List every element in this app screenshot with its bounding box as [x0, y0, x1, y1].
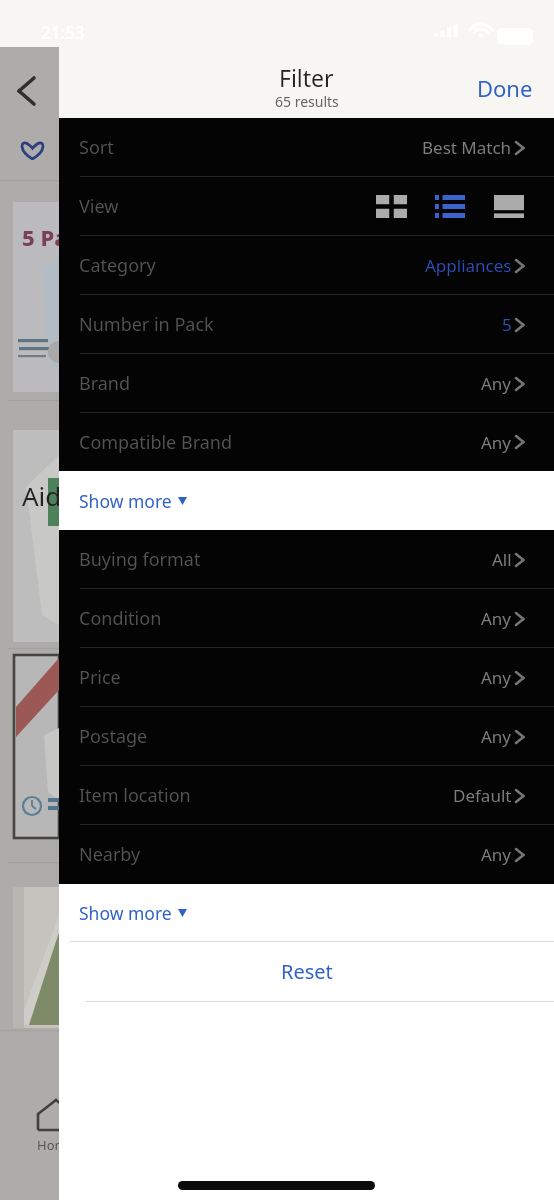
staticText: View	[79, 194, 119, 219]
staticText: Show more	[79, 489, 172, 513]
staticText: Buying format	[79, 547, 201, 572]
staticText: Price	[79, 665, 121, 690]
button[interactable]: Brand	[59, 354, 554, 413]
staticText: Brand	[79, 371, 131, 396]
staticText: Done	[477, 73, 533, 103]
staticText: Any	[481, 431, 512, 454]
button[interactable]: Buying format	[59, 530, 554, 589]
staticText: 21:53	[41, 21, 85, 44]
staticText: Appliances	[425, 254, 512, 277]
button[interactable]: Price	[59, 648, 554, 707]
button[interactable]: Compatible Brand	[59, 413, 554, 471]
staticText: Hom	[37, 1136, 67, 1154]
button[interactable]: Sort	[59, 118, 554, 177]
staticText: Aid	[22, 478, 62, 513]
staticText: Filter	[279, 62, 334, 93]
button[interactable]: Grid view	[376, 195, 407, 218]
staticText: 5	[502, 313, 512, 336]
staticText: Show more	[79, 901, 172, 925]
staticText: Condition	[79, 606, 162, 631]
staticText: Reset	[281, 958, 333, 985]
button[interactable]: Number in Pack	[59, 295, 554, 354]
staticText: Compatible Brand	[79, 430, 233, 455]
staticText: Default	[453, 784, 512, 807]
staticText: 65 results	[275, 92, 339, 111]
staticText: Postage	[79, 724, 148, 749]
staticText: Number in Pack	[79, 312, 214, 337]
staticText: Item location	[79, 783, 191, 808]
button[interactable]: Condition	[59, 589, 554, 648]
staticText: Sort	[79, 135, 114, 160]
staticText: Any	[481, 725, 512, 748]
staticText: Any	[481, 607, 512, 630]
button[interactable]: Category	[59, 236, 554, 295]
button[interactable]: Gallery view	[494, 195, 524, 218]
staticText: Nearby	[79, 842, 141, 867]
staticText: All	[492, 548, 512, 571]
button[interactable]: Show more	[59, 884, 554, 941]
button[interactable]: Done	[477, 73, 533, 103]
staticText: Any	[481, 666, 512, 689]
button[interactable]: List view	[435, 195, 465, 218]
staticText: Any	[481, 843, 512, 866]
button[interactable]: Reset	[59, 942, 554, 1001]
button[interactable]: Postage	[59, 707, 554, 766]
staticText: Best Match	[422, 136, 512, 159]
staticText: Any	[481, 372, 512, 395]
button[interactable]: Nearby	[59, 825, 554, 884]
staticText: Category	[79, 253, 156, 278]
button[interactable]: Item location	[59, 766, 554, 825]
button[interactable]: Show more	[59, 471, 554, 530]
staticText: 5 Pa	[22, 222, 68, 252]
